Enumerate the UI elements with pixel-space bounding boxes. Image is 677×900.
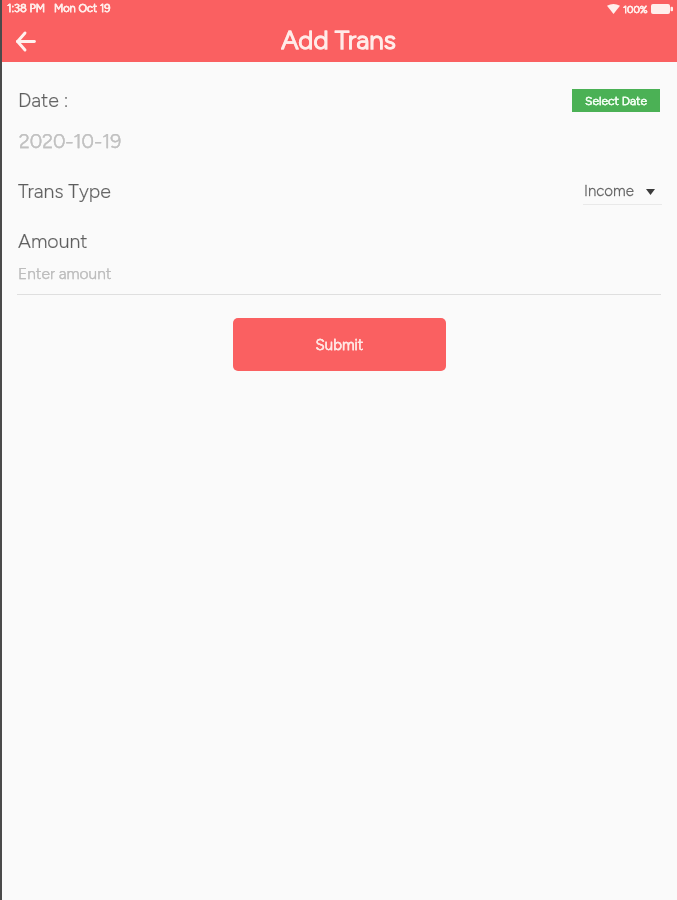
- staticText: Submit: [233, 336, 446, 354]
- button[interactable]: Transaction type: [583, 180, 662, 206]
- staticText: 1:38 PM: [7, 2, 46, 15]
- staticText: 100%: [623, 3, 648, 15]
- button[interactable]: Submit: [233, 318, 446, 371]
- button[interactable]: Select Date: [572, 89, 660, 112]
- staticText: Amount: [18, 229, 88, 252]
- staticText: Income: [584, 182, 634, 200]
- staticText: 2020-10-19: [19, 129, 122, 152]
- staticText: Date :: [18, 88, 69, 111]
- staticText: Mon Oct 19: [54, 2, 111, 15]
- staticText: Add Trans: [0, 24, 677, 55]
- button[interactable]: Back: [10, 26, 41, 57]
- staticText: Add Trans: [0, 24, 677, 55]
- staticText: Enter amount: [18, 264, 112, 283]
- staticText: Select Date: [572, 94, 660, 108]
- staticText: Select Date: [572, 94, 660, 108]
- staticText: 2020-10-19: [19, 129, 122, 152]
- staticText: Enter amount: [18, 264, 112, 283]
- staticText: Income: [584, 182, 634, 200]
- staticText: 1:38 PM: [7, 2, 46, 15]
- staticText: Date :: [18, 88, 69, 111]
- staticText: 100%: [623, 3, 648, 15]
- staticText: Trans Type: [18, 179, 111, 202]
- staticText: Mon Oct 19: [54, 2, 111, 15]
- staticText: Amount: [18, 229, 88, 252]
- staticText: Trans Type: [18, 179, 111, 202]
- staticText: Submit: [233, 336, 446, 354]
